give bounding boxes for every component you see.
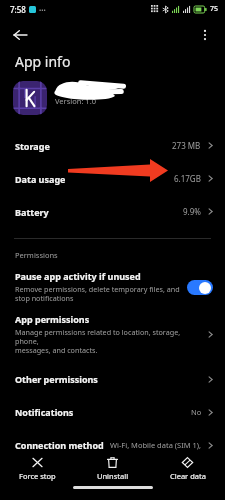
button[interactable]: Uninstall — [75, 454, 150, 483]
button[interactable]: Connection method — [0, 430, 225, 460]
staticText: Uninstall — [97, 471, 129, 481]
staticText: Version: 1.0 — [55, 96, 96, 106]
button[interactable]: App permissions — [0, 310, 225, 359]
staticText: Battery — [15, 206, 49, 218]
staticText: ··· — [39, 4, 46, 15]
staticText: Data usage — [15, 173, 66, 185]
button[interactable]: Data usage — [0, 162, 225, 195]
staticText: 7:58 — [10, 4, 26, 15]
staticText: 75 — [210, 4, 219, 14]
staticText: Clear data — [170, 471, 206, 481]
button[interactable]: Clear data — [150, 454, 225, 483]
button[interactable]: Back — [7, 22, 33, 48]
staticText: App permissions — [15, 313, 90, 325]
button[interactable]: Notifications — [0, 397, 225, 427]
staticText: 6.17GB — [174, 173, 201, 184]
button[interactable]: More options — [192, 22, 218, 48]
staticText: 9.9% — [183, 206, 201, 217]
button[interactable]: Force stop — [0, 454, 75, 483]
staticText: Manage permissions related to location, … — [15, 327, 200, 356]
staticText: Pause app activity if unused — [15, 270, 141, 282]
staticText: 273 MB — [172, 140, 201, 151]
staticText: Force stop — [19, 471, 56, 481]
button[interactable]: Battery — [0, 195, 225, 228]
staticText: Permissions — [15, 250, 58, 260]
staticText: App info — [15, 52, 71, 71]
staticText: Notifications — [15, 406, 74, 418]
staticText: Wi-Fi, Mobile data (SIM 1), — [110, 440, 202, 450]
staticText: Storage — [15, 140, 50, 152]
button[interactable]: Storage — [0, 129, 225, 162]
button[interactable]: Pause app activity if unused — [0, 270, 225, 304]
staticText: Connection method — [15, 439, 104, 451]
button[interactable]: Other permissions — [0, 364, 225, 394]
staticText: Other permissions — [15, 373, 98, 385]
staticText: No — [191, 407, 202, 417]
staticText: Remove permissions, delete temporary fil… — [15, 284, 180, 304]
